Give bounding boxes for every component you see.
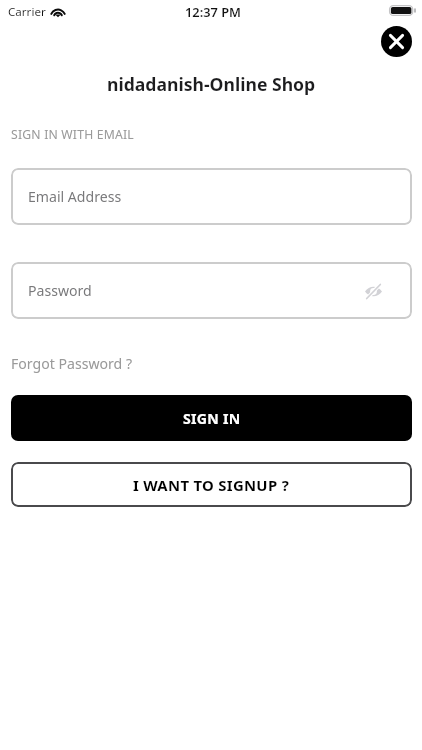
button[interactable]: Show password <box>362 280 384 302</box>
button[interactable]: Close <box>381 26 412 57</box>
staticText: Password <box>28 281 92 300</box>
staticText: nidadanish-Online Shop <box>107 72 316 96</box>
button[interactable]: SIGN IN <box>11 395 412 441</box>
staticText: SIGN IN <box>183 409 241 428</box>
staticText: I WANT TO SIGNUP ? <box>133 475 290 495</box>
staticText: 12:37 PM <box>185 3 241 20</box>
staticText: Carrier <box>8 4 46 20</box>
button[interactable]: I WANT TO SIGNUP ? <box>11 462 412 507</box>
button[interactable]: Forgot Password ? <box>11 354 132 373</box>
staticText: Email Address <box>28 187 122 206</box>
button[interactable]: Password <box>11 262 412 319</box>
staticText: SIGN IN WITH EMAIL <box>11 126 134 143</box>
button[interactable]: Email Address <box>11 168 412 225</box>
